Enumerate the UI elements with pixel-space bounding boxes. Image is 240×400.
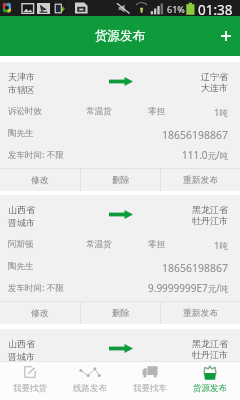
staticText: 18656198867 xyxy=(162,128,229,142)
staticText: 牡丹江市 xyxy=(192,349,228,360)
staticText: 我要找货 xyxy=(13,383,47,394)
staticText: 线路发布 xyxy=(73,383,107,394)
staticText: 晋城市 xyxy=(8,217,35,228)
staticText: 山西省 xyxy=(8,338,35,349)
staticText: 山西省 xyxy=(8,204,35,215)
button[interactable]: Add xyxy=(212,16,240,56)
button[interactable]: 删除 xyxy=(81,169,160,191)
staticText: 牡丹江市 xyxy=(192,215,228,226)
staticText: 阿斯顿 xyxy=(8,373,68,384)
staticText: 陶先生 xyxy=(8,128,34,139)
button[interactable]: 我要找车 xyxy=(120,361,180,400)
staticText: 重新发布 xyxy=(183,308,219,319)
staticText: 111.0元/吨 xyxy=(182,148,229,162)
staticText: 阿斯顿 xyxy=(8,239,68,250)
staticText: 修改 xyxy=(31,308,49,319)
staticText: 货源发布 xyxy=(193,383,227,394)
staticText: 1吨 xyxy=(183,239,228,252)
button[interactable]: 线路发布 xyxy=(60,361,120,400)
staticText: 常温货 xyxy=(68,106,130,117)
staticText: 删除 xyxy=(112,308,130,319)
staticText: 零担 xyxy=(130,239,183,250)
staticText: 陶先生 xyxy=(8,261,34,272)
staticText: 1吨 xyxy=(183,106,228,119)
staticText: 常温货 xyxy=(68,239,130,250)
staticText: 诉讼时效 xyxy=(8,106,68,117)
staticText: 删除 xyxy=(112,175,130,186)
staticText: 市辖区 xyxy=(8,84,35,95)
staticText: 1吨 xyxy=(183,373,228,386)
staticText: 大连市 xyxy=(201,82,228,93)
button[interactable]: 修改 xyxy=(0,169,80,191)
staticText: 辽宁省 xyxy=(201,71,228,82)
staticText: 零担 xyxy=(130,106,183,117)
staticText: 修改 xyxy=(31,175,49,186)
staticText: 01:38 xyxy=(198,1,233,17)
staticText: 天津市 xyxy=(8,71,35,82)
staticText: 晋城市 xyxy=(8,351,35,362)
staticText: 18656198867 xyxy=(162,261,229,275)
staticText: 重新发布 xyxy=(183,175,219,186)
staticText: 发车时间: 不限 xyxy=(8,281,65,294)
staticText: 黑龙江省 xyxy=(192,338,228,349)
button[interactable]: 我要找货 xyxy=(0,361,60,400)
button[interactable]: 重新发布 xyxy=(161,302,240,324)
staticText: 常温货 xyxy=(68,373,130,384)
staticText: 零担 xyxy=(130,373,183,384)
button[interactable]: 重新发布 xyxy=(161,169,240,191)
staticText: 黑龙江省 xyxy=(192,204,228,215)
staticText: 61% xyxy=(167,3,185,15)
staticText: 货源发布 xyxy=(95,28,145,44)
staticText: 发车时间: 不限 xyxy=(8,148,65,161)
button[interactable]: 货源发布 xyxy=(180,361,240,400)
staticText: 我要找车 xyxy=(133,383,167,394)
button[interactable]: 修改 xyxy=(0,302,80,324)
staticText: 9.9999999E7元/吨 xyxy=(148,281,229,295)
button[interactable]: 删除 xyxy=(81,302,160,324)
